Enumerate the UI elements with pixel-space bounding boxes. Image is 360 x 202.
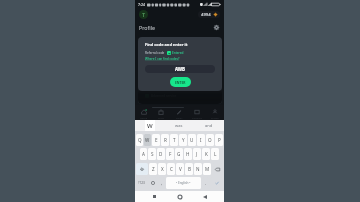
staticText: H [186,151,190,157]
button[interactable]: Where I can find codes? [145,57,180,61]
staticText: O [208,137,212,143]
staticText: Tasks [176,116,183,119]
button[interactable]: H [184,148,192,160]
button[interactable]: J [193,148,201,160]
button[interactable]: Q [136,134,143,146]
button[interactable]: T [170,134,178,146]
staticText: Profile [139,24,156,31]
button[interactable]: , [158,177,165,189]
staticText: T [142,11,146,18]
staticText: Referral code [145,51,165,55]
staticText: J [196,151,198,157]
button[interactable]: P [215,134,223,146]
button[interactable]: W [144,134,151,146]
button[interactable]: Settings [213,24,220,31]
staticText: AWB [175,66,186,72]
staticText: 4994 [201,12,211,18]
button[interactable]: Shop [152,105,170,120]
button[interactable]: W [145,120,155,131]
button[interactable]: ?123 [136,177,147,189]
button[interactable]: Partners [188,105,206,120]
staticText: Find code and enter it [145,42,188,47]
button[interactable]: Emoji [148,177,157,189]
button[interactable]: Z [149,163,157,175]
staticText: G [177,151,181,157]
button[interactable]: S [148,148,156,160]
staticText: D [159,151,163,157]
button[interactable]: AWB [145,65,215,73]
staticText: . [205,180,207,186]
button[interactable]: 4994 [198,11,220,18]
button[interactable]: O [206,134,214,146]
button[interactable]: Back [199,191,210,202]
button[interactable]: B [185,163,193,175]
button[interactable]: Enter [210,177,223,189]
button[interactable]: G [175,148,183,160]
button[interactable]: V [176,163,184,175]
staticText: ENTER [175,80,186,84]
staticText: , [161,180,163,186]
button[interactable]: E [152,134,160,146]
button[interactable]: F [166,148,174,160]
staticText: Q [138,137,142,143]
staticText: F [169,151,172,157]
staticText: U [190,137,194,143]
button[interactable]: Backspace [212,163,223,175]
staticText: Entered [172,51,184,55]
staticText: was [175,123,183,128]
staticText: L [214,151,217,157]
staticText: 7:24 [138,2,146,7]
button[interactable]: K [202,148,210,160]
staticText: B [188,166,191,172]
staticText: S [151,151,154,157]
button[interactable]: C [167,163,175,175]
staticText: • English • [176,181,191,185]
button[interactable]: Shift [136,163,148,175]
button[interactable]: Tasks [170,105,188,120]
button[interactable]: Account [139,10,148,19]
staticText: T [173,137,176,143]
staticText: N [196,166,200,172]
staticText: V [179,166,182,172]
button[interactable]: A [140,148,147,160]
button[interactable]: Profile [206,105,224,120]
staticText: X [161,166,164,172]
staticText: W [145,137,150,143]
staticText: ?123 [138,181,145,185]
staticText: M [205,166,210,172]
button[interactable]: U [188,134,196,146]
button[interactable]: Home [174,191,185,202]
staticText: Home [140,116,148,119]
button[interactable]: N [194,163,202,175]
staticText: Z [152,166,155,172]
staticText: Profile [211,116,219,119]
button[interactable]: Recents [149,191,160,202]
staticText: A [142,151,145,157]
staticText: Shop [158,116,164,119]
button[interactable]: Y [179,134,187,146]
button[interactable]: R [161,134,169,146]
staticText: K [205,151,208,157]
button[interactable]: • English • [166,177,201,189]
staticText: P [218,137,221,143]
button[interactable]: and [194,120,224,131]
button[interactable]: M [203,163,211,175]
staticText: Partners [192,116,203,119]
button[interactable]: L [211,148,219,160]
staticText: I [200,137,202,143]
staticText: C [170,166,173,172]
button[interactable]: X [158,163,166,175]
staticText: Y [182,137,185,143]
button[interactable]: I [197,134,205,146]
button[interactable]: D [157,148,165,160]
button[interactable]: was [164,120,194,131]
button[interactable]: Home [135,105,152,120]
staticText: and [205,123,213,128]
staticText: E [155,137,158,143]
button[interactable]: ENTER [170,77,191,87]
staticText: W [147,122,153,130]
button[interactable]: . [202,177,209,189]
staticText: R [164,137,167,143]
